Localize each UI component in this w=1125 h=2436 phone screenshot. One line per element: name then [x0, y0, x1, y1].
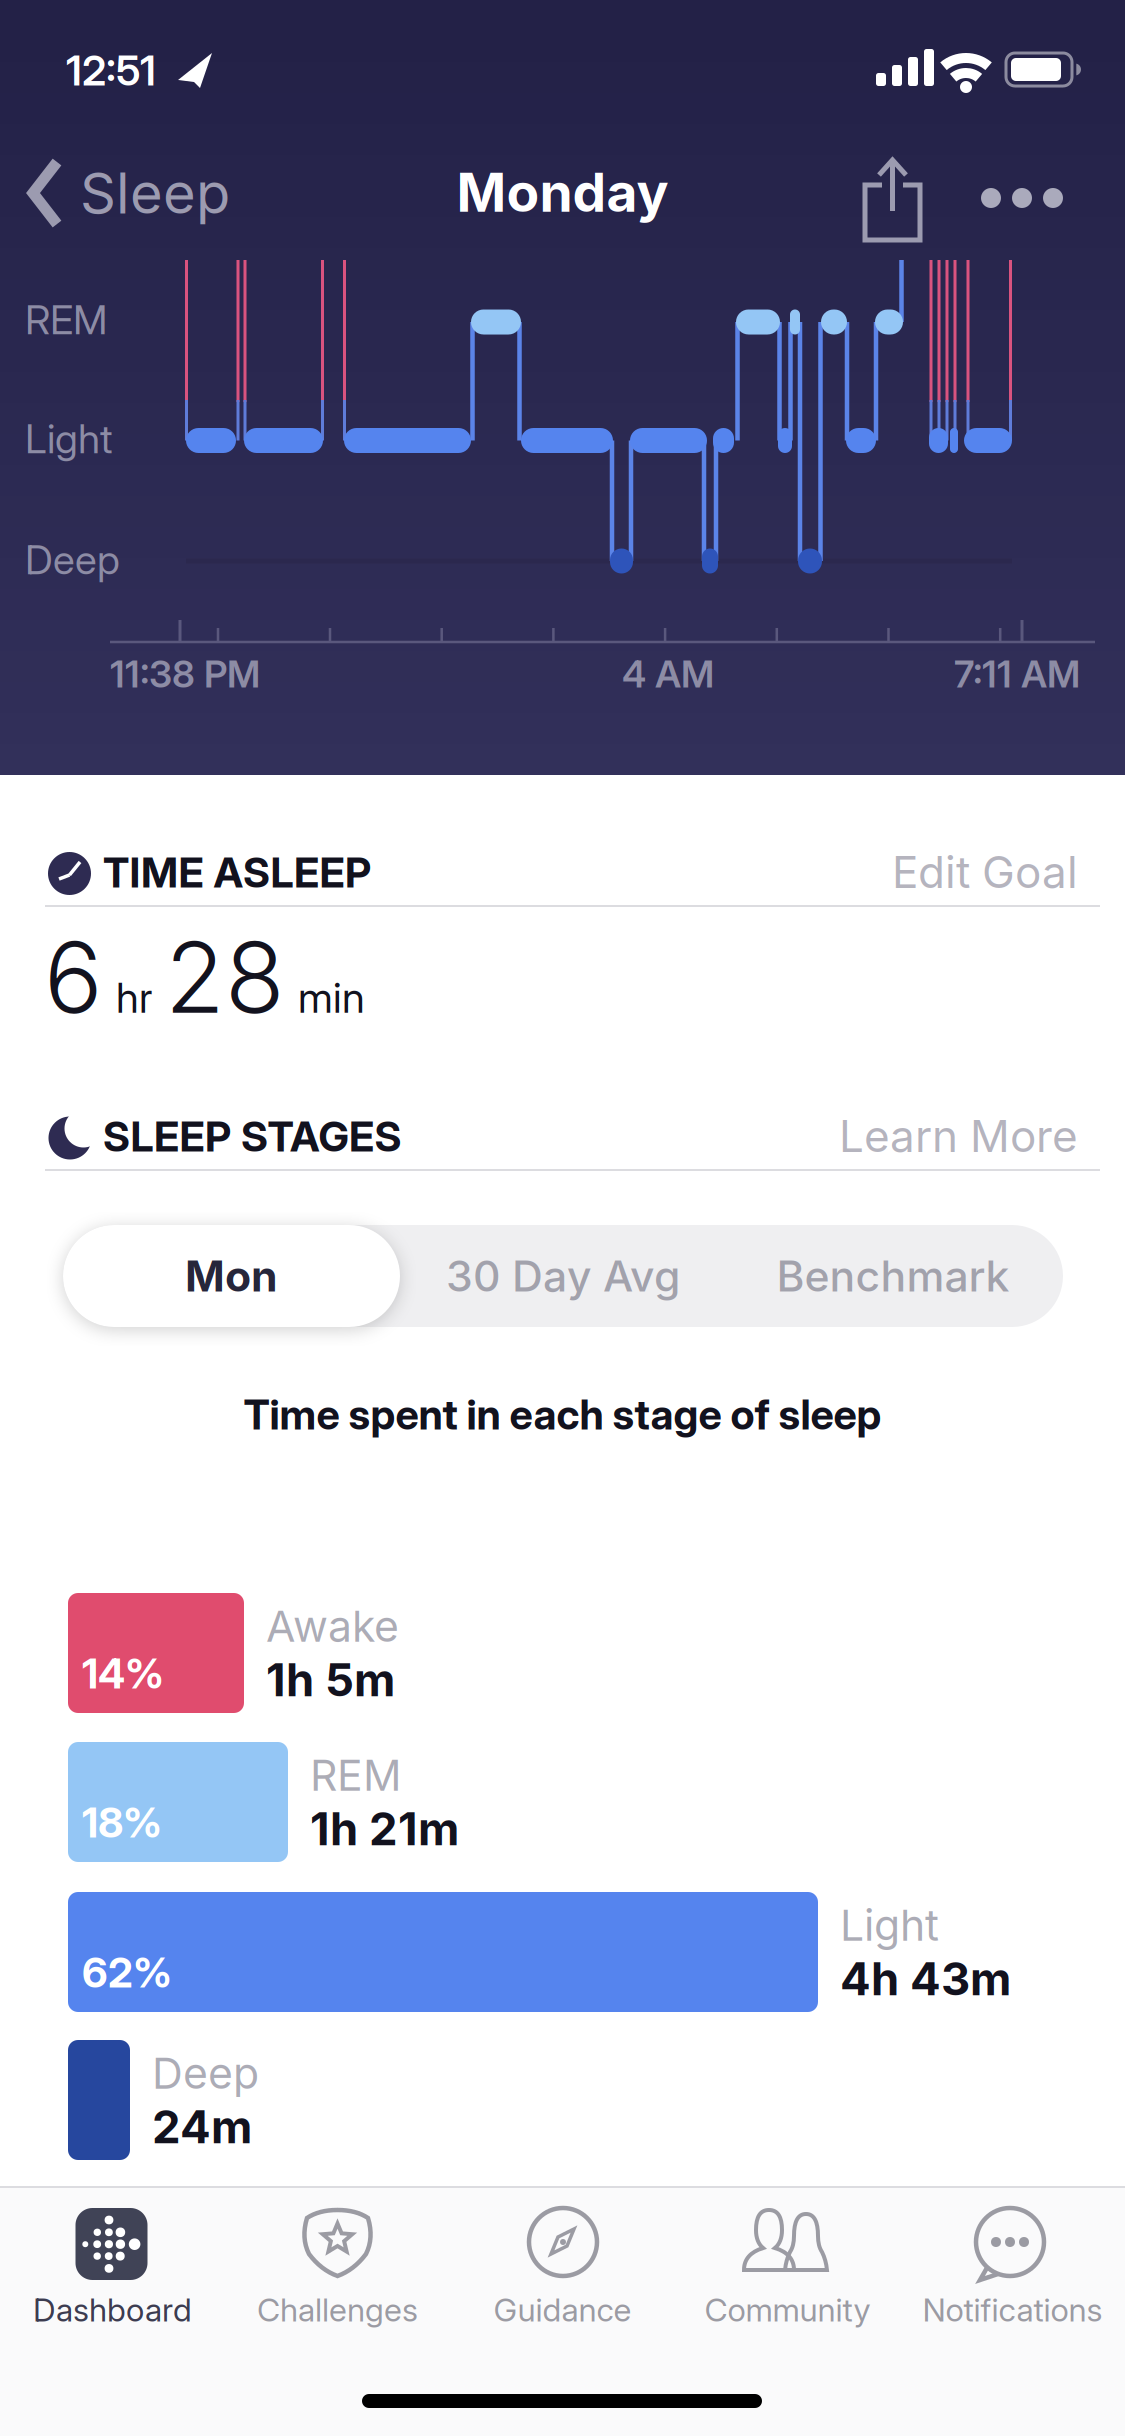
- staticText: TIME ASLEEP: [103, 848, 371, 897]
- staticText: SLEEP STAGES: [103, 1112, 401, 1161]
- button[interactable]: Edit Goal: [818, 842, 1078, 902]
- staticText: Notifications: [922, 2291, 1102, 2329]
- button[interactable]: Share: [838, 148, 948, 258]
- staticText: Deep: [25, 536, 120, 583]
- staticText: Time spent in each stage of sleep: [243, 1390, 881, 1439]
- button[interactable]: Mon: [63, 1225, 400, 1327]
- staticText: REM: [310, 1750, 402, 1800]
- button[interactable]: Benchmark: [728, 1225, 1058, 1327]
- staticText: 1h 5m: [266, 1653, 395, 1706]
- staticText: 62%: [82, 1948, 172, 1997]
- staticText: Light: [840, 1900, 939, 1950]
- button[interactable]: 30 Day Avg: [398, 1225, 728, 1327]
- staticText: Awake: [266, 1601, 399, 1651]
- staticText: 11:38 PM: [110, 652, 260, 696]
- staticText: Sleep: [80, 160, 230, 226]
- button[interactable]: Notifications: [900, 2186, 1125, 2346]
- staticText: Light: [25, 415, 113, 462]
- staticText: 12:51: [66, 46, 156, 95]
- staticText: 7:11 AM: [954, 652, 1080, 696]
- staticText: REM: [25, 296, 107, 343]
- staticText: min: [298, 973, 365, 1022]
- staticText: 4 AM: [622, 652, 714, 696]
- staticText: 30 Day Avg: [446, 1251, 680, 1301]
- button[interactable]: Community: [675, 2186, 900, 2346]
- staticText: 6: [44, 920, 103, 1035]
- staticText: Edit Goal: [892, 846, 1078, 898]
- staticText: 18%: [82, 1798, 162, 1847]
- button[interactable]: Challenges: [225, 2186, 450, 2346]
- staticText: Benchmark: [776, 1251, 1009, 1301]
- button[interactable]: Back: [30, 160, 230, 226]
- staticText: Dashboard: [33, 2291, 192, 2329]
- staticText: 14%: [82, 1649, 164, 1698]
- staticText: 24m: [152, 2100, 252, 2153]
- staticText: Challenges: [257, 2291, 418, 2329]
- staticText: 4h 43m: [840, 1952, 1011, 2005]
- staticText: 28: [165, 920, 285, 1035]
- button[interactable]: Dashboard: [0, 2186, 225, 2346]
- staticText: Deep: [152, 2048, 259, 2098]
- staticText: Mon: [185, 1251, 278, 1301]
- staticText: Community: [704, 2291, 870, 2329]
- button[interactable]: More: [966, 163, 1078, 233]
- staticText: Monday: [456, 161, 668, 224]
- button[interactable]: Learn More: [818, 1106, 1078, 1166]
- staticText: Guidance: [493, 2291, 631, 2329]
- staticText: 1h 21m: [310, 1802, 459, 1855]
- button[interactable]: Guidance: [450, 2186, 675, 2346]
- staticText: hr: [116, 973, 152, 1022]
- staticText: Learn More: [839, 1110, 1078, 1162]
